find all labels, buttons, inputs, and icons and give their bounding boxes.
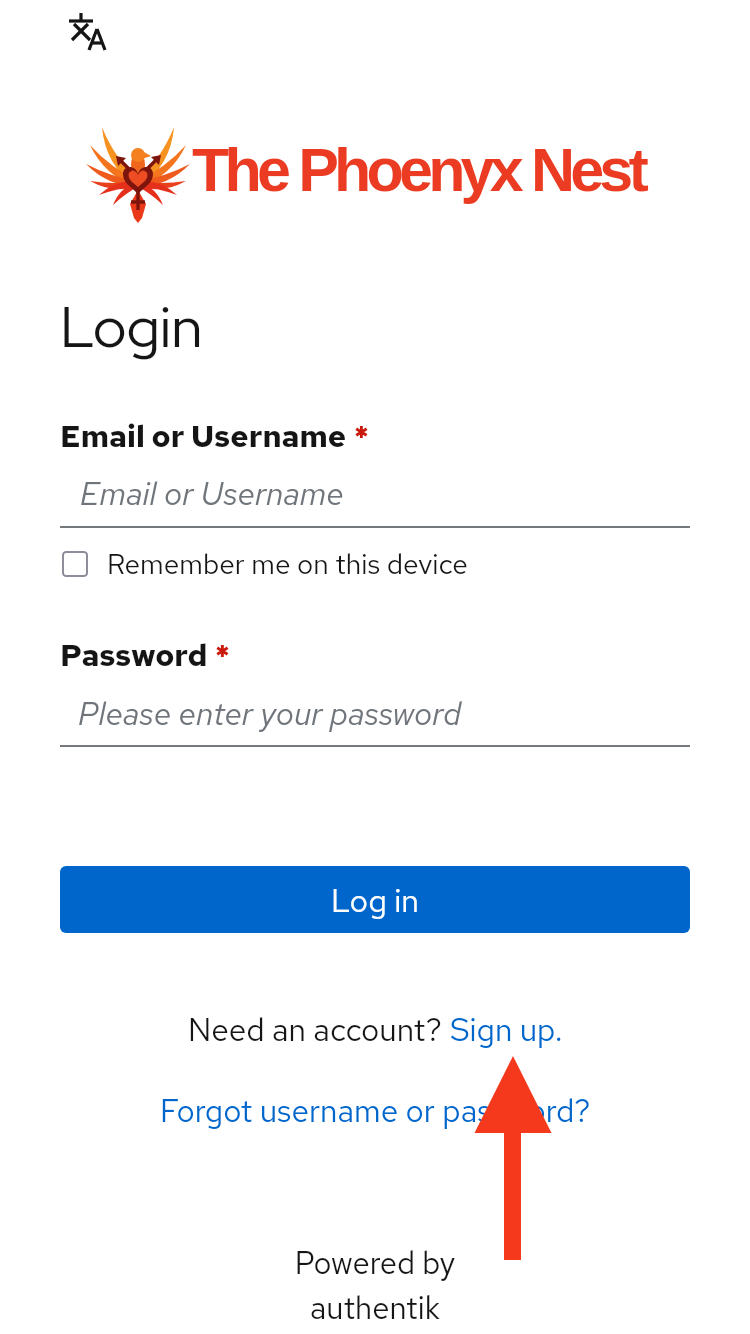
staticText: Need an account? bbox=[188, 1009, 450, 1051]
staticText: Email or Username bbox=[60, 415, 347, 456]
staticText: Please enter your password bbox=[78, 692, 462, 734]
staticText: Powered by authentik bbox=[0, 1242, 750, 1328]
staticText: * bbox=[347, 415, 369, 456]
button[interactable]: Please enter your password bbox=[60, 682, 690, 745]
button[interactable]: Email or Username bbox=[60, 462, 690, 528]
button[interactable]: Log in bbox=[60, 866, 690, 933]
staticText: Log in bbox=[331, 879, 420, 921]
staticText: Login bbox=[60, 289, 203, 364]
button[interactable]: Forgot username or password? bbox=[160, 1090, 591, 1132]
button[interactable] bbox=[60, 4, 116, 60]
staticText: * bbox=[208, 634, 230, 675]
staticText: Email or Username bbox=[80, 472, 344, 514]
button[interactable]: Sign up. bbox=[450, 1009, 563, 1051]
button[interactable]: Remember me on this device bbox=[62, 545, 468, 582]
staticText: Remember me on this device bbox=[107, 545, 468, 582]
staticText: Password bbox=[60, 634, 208, 675]
staticText: The Phoenyx Nest bbox=[192, 136, 645, 204]
